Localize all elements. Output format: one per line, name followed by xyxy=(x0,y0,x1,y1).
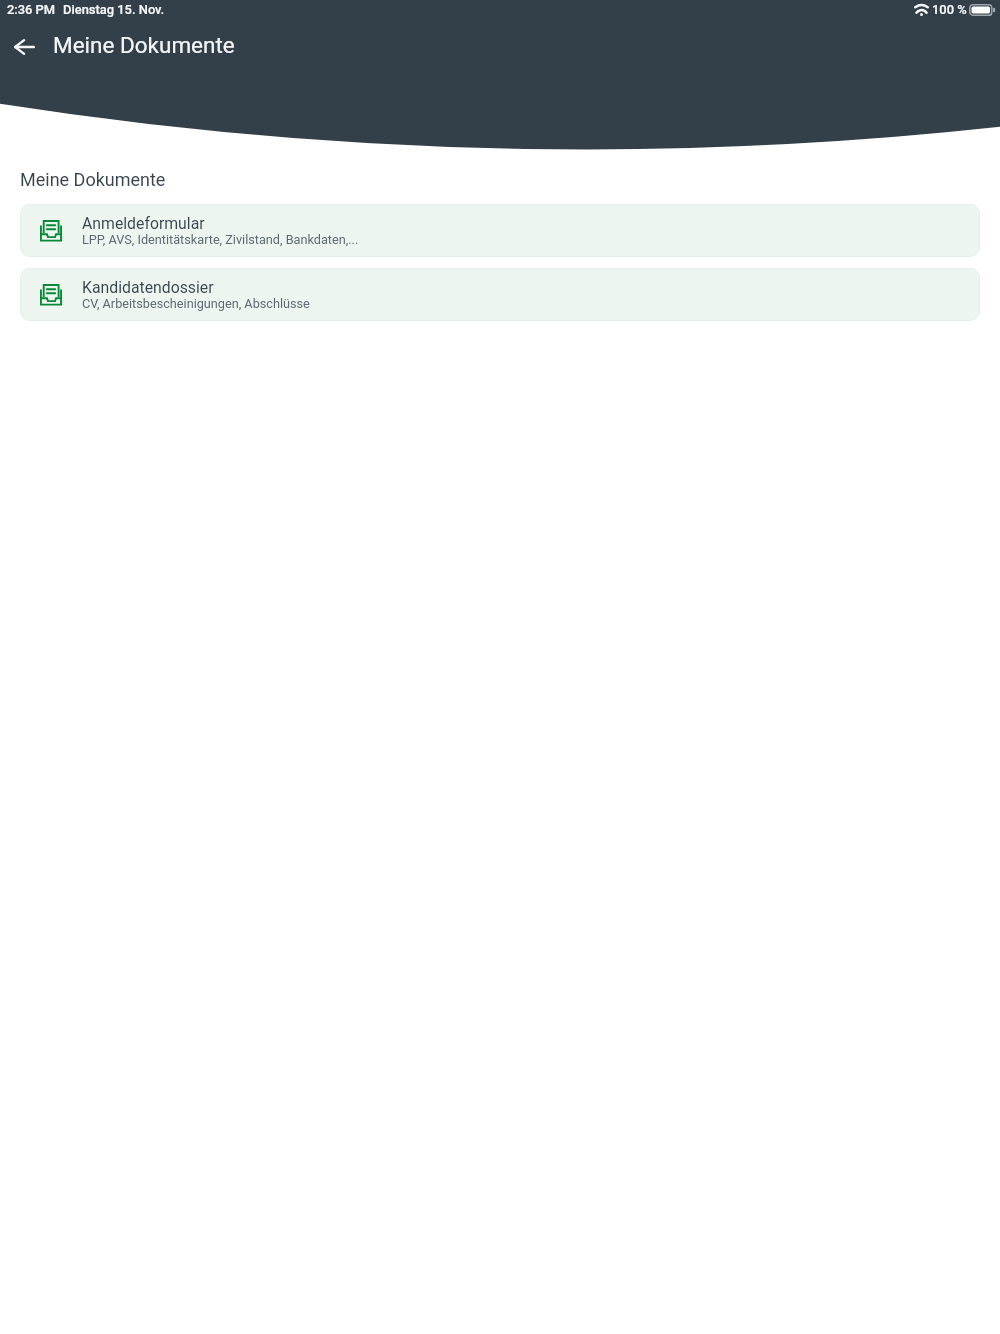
staticText: 2:36 PM xyxy=(7,2,56,17)
button[interactable]: Anmeldeformular xyxy=(20,204,980,257)
button[interactable]: Back xyxy=(2,25,46,69)
staticText: LPP, AVS, Identitätskarte, Zivilstand, B… xyxy=(82,232,359,247)
staticText: 100 % xyxy=(932,2,967,17)
staticText: CV, Arbeitsbescheinigungen, Abschlüsse xyxy=(82,296,310,311)
staticText: Dienstag 15. Nov. xyxy=(63,2,165,17)
button[interactable]: Kandidatendossier xyxy=(20,268,980,321)
staticText: Meine Dokumente xyxy=(20,169,166,190)
staticText: Kandidatendossier xyxy=(82,278,214,297)
staticText: Anmeldeformular xyxy=(82,214,205,233)
staticText: Meine Dokumente xyxy=(53,32,235,58)
